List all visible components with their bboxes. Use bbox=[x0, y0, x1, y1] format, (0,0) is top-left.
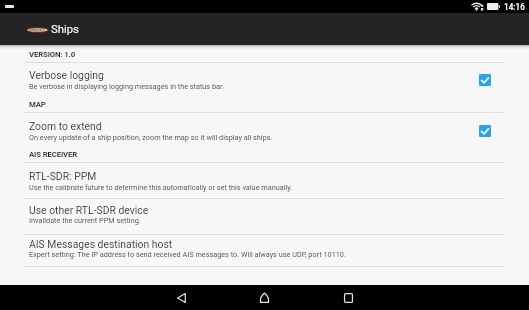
button[interactable]: Toggle Verbose logging bbox=[479, 74, 491, 86]
button[interactable]: Home bbox=[239, 285, 289, 310]
staticText: Invalidate the current PPM setting. bbox=[29, 216, 141, 225]
button[interactable]: Back bbox=[156, 285, 206, 310]
button[interactable] bbox=[0, 111, 529, 161]
staticText: Verbose logging bbox=[29, 69, 104, 81]
button[interactable] bbox=[0, 62, 529, 111]
staticText: MAP bbox=[29, 100, 46, 109]
staticText: 14:16 bbox=[504, 2, 525, 12]
staticText: AIS RECEIVER bbox=[29, 150, 78, 159]
staticText: Use other RTL-SDR device bbox=[29, 204, 149, 216]
staticText: Zoom to extend bbox=[29, 120, 102, 132]
staticText: Expert setting: The IP address to send r… bbox=[29, 250, 346, 259]
staticText: Use the calibrate future to determine th… bbox=[29, 183, 293, 192]
staticText: On every update of a ship position, zoom… bbox=[29, 133, 273, 142]
staticText: VERSION: 1.0 bbox=[29, 50, 75, 59]
button[interactable] bbox=[0, 197, 529, 233]
staticText: Be verbose in displaying logging message… bbox=[29, 82, 224, 91]
button[interactable] bbox=[0, 234, 529, 266]
button[interactable]: Toggle Zoom to extend bbox=[479, 125, 491, 137]
staticText: AIS Messages destination host bbox=[29, 238, 173, 250]
staticText: RTL-SDR: PPM bbox=[29, 170, 97, 182]
staticText: Ships bbox=[51, 23, 79, 36]
button[interactable]: Recent apps bbox=[323, 285, 373, 310]
button[interactable] bbox=[0, 161, 529, 197]
